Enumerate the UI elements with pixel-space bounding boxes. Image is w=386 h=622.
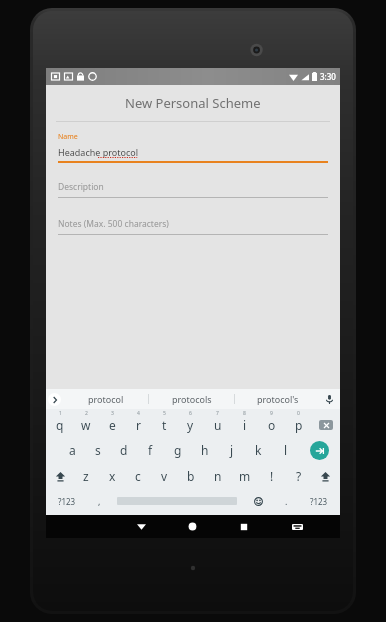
button[interactable]: ?123 xyxy=(47,489,87,513)
button[interactable]: c xyxy=(125,463,151,489)
staticText: protocol xyxy=(88,393,124,405)
staticText: q xyxy=(56,417,64,433)
staticText: protocol's xyxy=(257,393,299,405)
staticText: f xyxy=(148,442,153,458)
staticText: Notes (Max. 500 characters) xyxy=(58,218,169,230)
staticText: ?123 xyxy=(310,496,328,507)
staticText: z xyxy=(83,468,89,484)
button[interactable]: Emoji xyxy=(242,489,274,513)
button[interactable]: a xyxy=(59,437,85,463)
button[interactable]: j xyxy=(218,437,245,463)
staticText: Headache protocol xyxy=(58,146,138,158)
button[interactable]: protocol's xyxy=(235,389,320,409)
button[interactable]: 4 xyxy=(125,409,151,437)
button[interactable]: Recent apps xyxy=(218,515,269,538)
button[interactable]: Backspace xyxy=(312,409,339,437)
button[interactable]: s xyxy=(85,437,111,463)
staticText: 8 xyxy=(243,410,246,417)
staticText: b xyxy=(187,468,195,484)
button[interactable]: ? xyxy=(285,463,312,489)
button[interactable]: , xyxy=(87,489,112,513)
button[interactable]: 6 xyxy=(177,409,204,437)
button[interactable]: n xyxy=(204,463,231,489)
staticText: o xyxy=(268,417,276,433)
staticText: Description xyxy=(58,181,104,193)
staticText: y xyxy=(187,417,194,433)
staticText: u xyxy=(214,417,222,433)
staticText: x xyxy=(109,468,116,484)
button[interactable]: Description xyxy=(58,181,328,198)
button[interactable]: 7 xyxy=(204,409,231,437)
button[interactable]: Home xyxy=(167,515,218,538)
button[interactable]: f xyxy=(137,437,164,463)
button[interactable]: b xyxy=(177,463,204,489)
staticText: , xyxy=(98,495,101,507)
button[interactable]: h xyxy=(191,437,218,463)
button[interactable]: protocol xyxy=(64,389,148,409)
staticText: 6 xyxy=(189,410,192,417)
button[interactable]: ! xyxy=(258,463,285,489)
staticText: v xyxy=(161,468,168,484)
button[interactable]: m xyxy=(231,463,258,489)
staticText: i xyxy=(243,417,247,433)
button[interactable]: Notes (Max. 500 characters) xyxy=(58,218,328,235)
button[interactable]: Switch input method xyxy=(269,515,325,538)
button[interactable]: 1 xyxy=(47,409,73,437)
button[interactable]: 8 xyxy=(231,409,258,437)
staticText: 5 xyxy=(163,410,166,417)
button[interactable]: l xyxy=(272,437,299,463)
staticText: k xyxy=(255,442,262,458)
staticText: 4 xyxy=(137,410,140,417)
button[interactable]: Shift xyxy=(47,463,73,489)
button[interactable]: 3 xyxy=(99,409,125,437)
button[interactable]: g xyxy=(164,437,191,463)
staticText: g xyxy=(174,442,182,458)
button[interactable]: Shift xyxy=(312,463,339,489)
staticText: d xyxy=(120,442,128,458)
button[interactable]: 0 xyxy=(285,409,312,437)
button[interactable]: Voice input xyxy=(322,392,336,406)
staticText: a xyxy=(69,442,76,458)
staticText: 0 xyxy=(297,410,300,417)
staticText: c xyxy=(135,468,141,484)
button[interactable]: Expand suggestions xyxy=(48,393,61,406)
staticText: t xyxy=(162,417,167,433)
staticText: 7 xyxy=(216,410,219,417)
staticText: l xyxy=(284,442,288,458)
staticText: 9 xyxy=(270,410,273,417)
button[interactable]: ?123 xyxy=(299,489,339,513)
button[interactable]: v xyxy=(151,463,177,489)
button[interactable]: d xyxy=(111,437,137,463)
button[interactable]: 9 xyxy=(258,409,285,437)
staticText: protocols xyxy=(172,393,212,405)
staticText: s xyxy=(95,442,101,458)
staticText: n xyxy=(214,468,222,484)
staticText: 2 xyxy=(85,410,88,417)
button[interactable]: z xyxy=(73,463,99,489)
staticText: m xyxy=(239,468,251,484)
staticText: 3 xyxy=(111,410,114,417)
staticText: . xyxy=(285,495,288,507)
staticText: New Personal Scheme xyxy=(125,94,261,112)
staticText: ? xyxy=(296,468,302,484)
staticText: h xyxy=(201,442,209,458)
staticText: 3:30 xyxy=(320,71,336,82)
button[interactable]: Next field xyxy=(299,437,339,463)
staticText: ?123 xyxy=(58,496,76,507)
button[interactable]: Space xyxy=(112,489,242,513)
button[interactable]: Hide keyboard xyxy=(116,515,167,538)
staticText: p xyxy=(295,417,303,433)
button[interactable]: Name xyxy=(58,132,328,163)
staticText: w xyxy=(81,417,91,433)
staticText: r xyxy=(136,417,141,433)
button[interactable]: 2 xyxy=(73,409,99,437)
button[interactable]: protocols xyxy=(149,389,234,409)
staticText: j xyxy=(230,442,234,458)
staticText: e xyxy=(109,417,116,433)
button[interactable]: x xyxy=(99,463,125,489)
button[interactable]: 5 xyxy=(151,409,177,437)
button[interactable]: k xyxy=(245,437,272,463)
staticText: ! xyxy=(270,468,274,484)
staticText: 1 xyxy=(59,410,62,417)
button[interactable]: . xyxy=(274,489,299,513)
